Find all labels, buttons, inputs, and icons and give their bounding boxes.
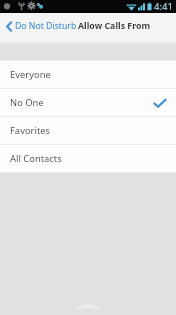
staticText: Favorites (10, 124, 51, 137)
staticText: Everyone (10, 68, 51, 81)
other: Selected (154, 99, 166, 108)
button[interactable]: Favorites (0, 117, 176, 144)
button[interactable]: Back to Do Not Disturb (0, 20, 78, 32)
staticText: No One (10, 96, 44, 109)
staticText: Allow Calls From (78, 20, 150, 32)
button[interactable]: All Contacts (0, 145, 176, 172)
button[interactable]: No One (0, 89, 176, 116)
staticText: Do Not Disturb (15, 20, 77, 32)
staticText: All Contacts (10, 152, 62, 165)
other: Back to Do Not Disturb (5, 21, 13, 32)
staticText: 4:41 (154, 0, 173, 13)
button[interactable]: Everyone (0, 61, 176, 88)
